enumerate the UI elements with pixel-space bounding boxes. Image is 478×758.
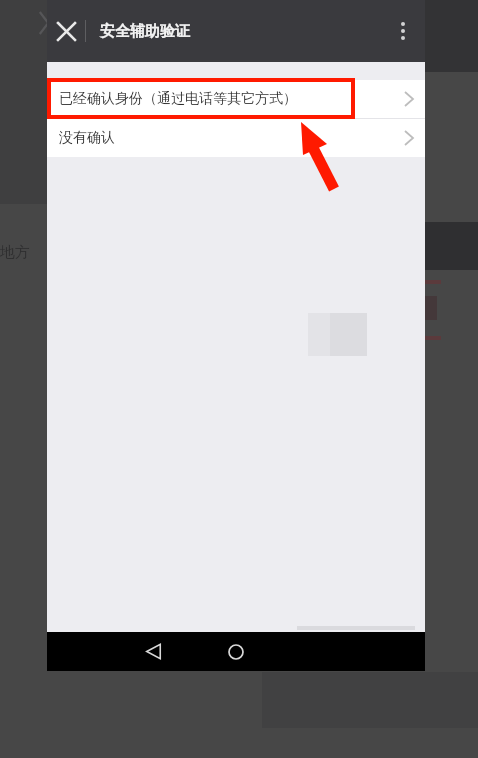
staticText: 没有确认 [59, 129, 115, 147]
staticText: 安全辅助验证 [100, 22, 190, 41]
staticText: 已经确认身份（通过电话等其它方式） [59, 90, 297, 108]
button[interactable]: 没有确认 [47, 119, 425, 157]
staticText: 地方 [0, 243, 30, 262]
button[interactable]: Back [131, 632, 175, 671]
button[interactable]: Close [47, 0, 85, 62]
button[interactable]: More options [381, 0, 425, 62]
button[interactable]: 已经确认身份（通过电话等其它方式） [47, 80, 425, 118]
button[interactable]: Home [214, 632, 258, 671]
